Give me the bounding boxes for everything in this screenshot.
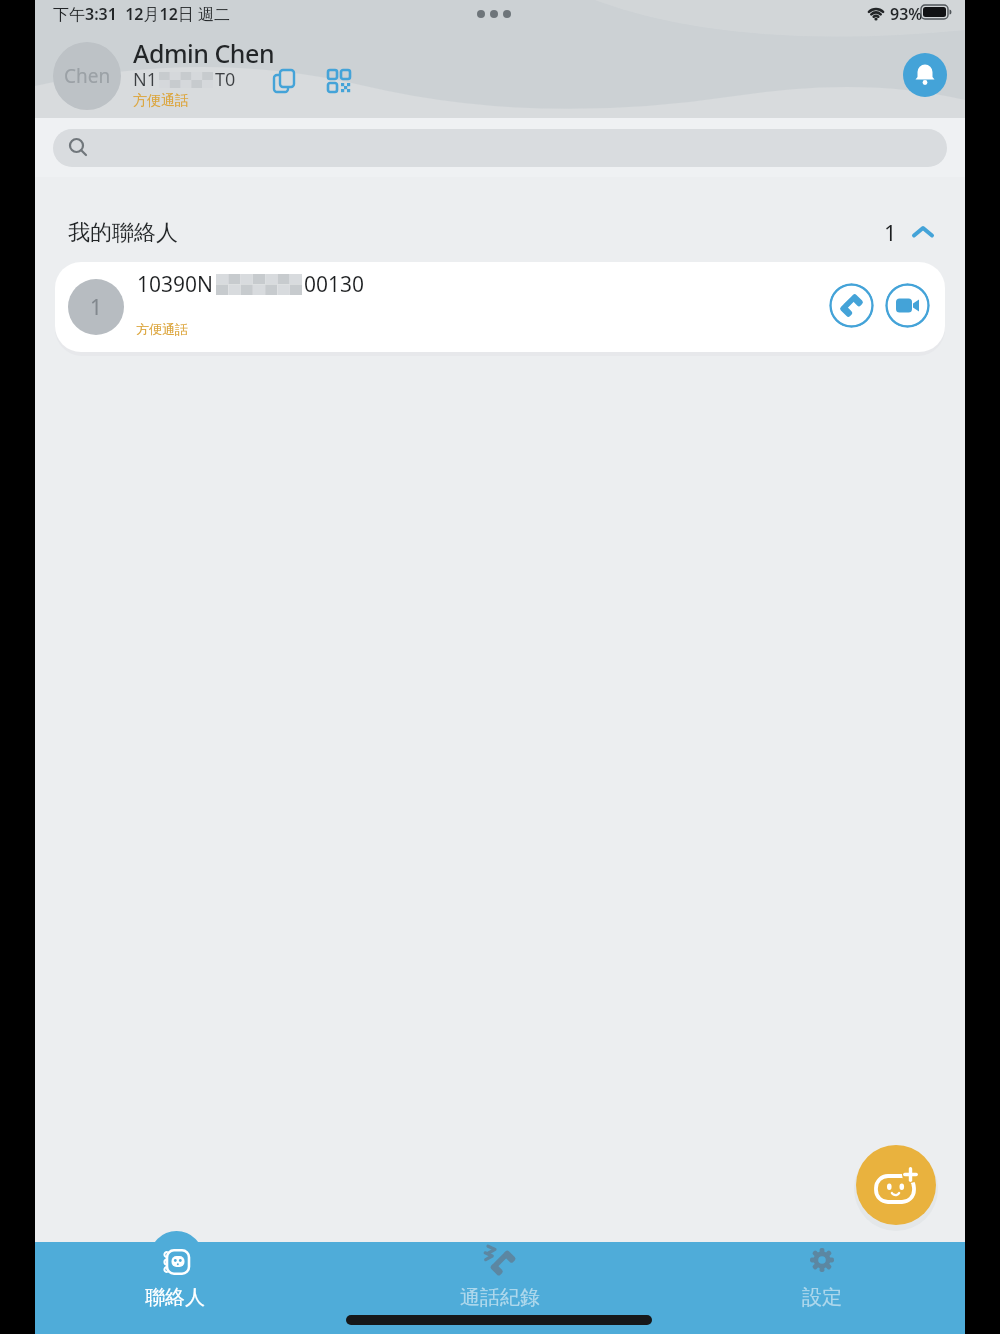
button[interactable]	[326, 68, 352, 94]
staticText: 1	[90, 293, 103, 322]
staticText: 方便通話	[136, 321, 188, 337]
staticText: T0	[215, 67, 236, 92]
staticText: 下午3:31 12月12日 週二	[53, 3, 230, 25]
staticText: 93%	[890, 3, 923, 25]
button[interactable]	[272, 68, 298, 94]
staticText: 聯絡人	[145, 1285, 205, 1310]
staticText: 10390N	[137, 270, 214, 299]
staticText: 通話紀錄	[460, 1285, 540, 1310]
staticText: Chen	[64, 63, 111, 89]
button[interactable]: 通話紀錄	[430, 1230, 570, 1330]
staticText: 我的聯絡人	[68, 219, 178, 247]
button[interactable]	[53, 129, 947, 167]
button[interactable]	[885, 283, 930, 328]
button[interactable]: 設定	[752, 1230, 892, 1330]
button[interactable]: 1	[55, 262, 945, 352]
staticText: Admin Chen	[133, 36, 275, 70]
button[interactable]	[829, 283, 874, 328]
button[interactable]: 1	[884, 217, 935, 247]
staticText: 設定	[802, 1285, 842, 1310]
button[interactable]: 聯絡人	[107, 1230, 247, 1330]
button[interactable]	[856, 1145, 936, 1225]
staticText: 1	[884, 217, 897, 247]
button[interactable]	[903, 53, 947, 97]
staticText: 方便通話	[133, 92, 189, 110]
staticText: 00130	[304, 270, 365, 299]
staticText: N1	[133, 67, 157, 92]
